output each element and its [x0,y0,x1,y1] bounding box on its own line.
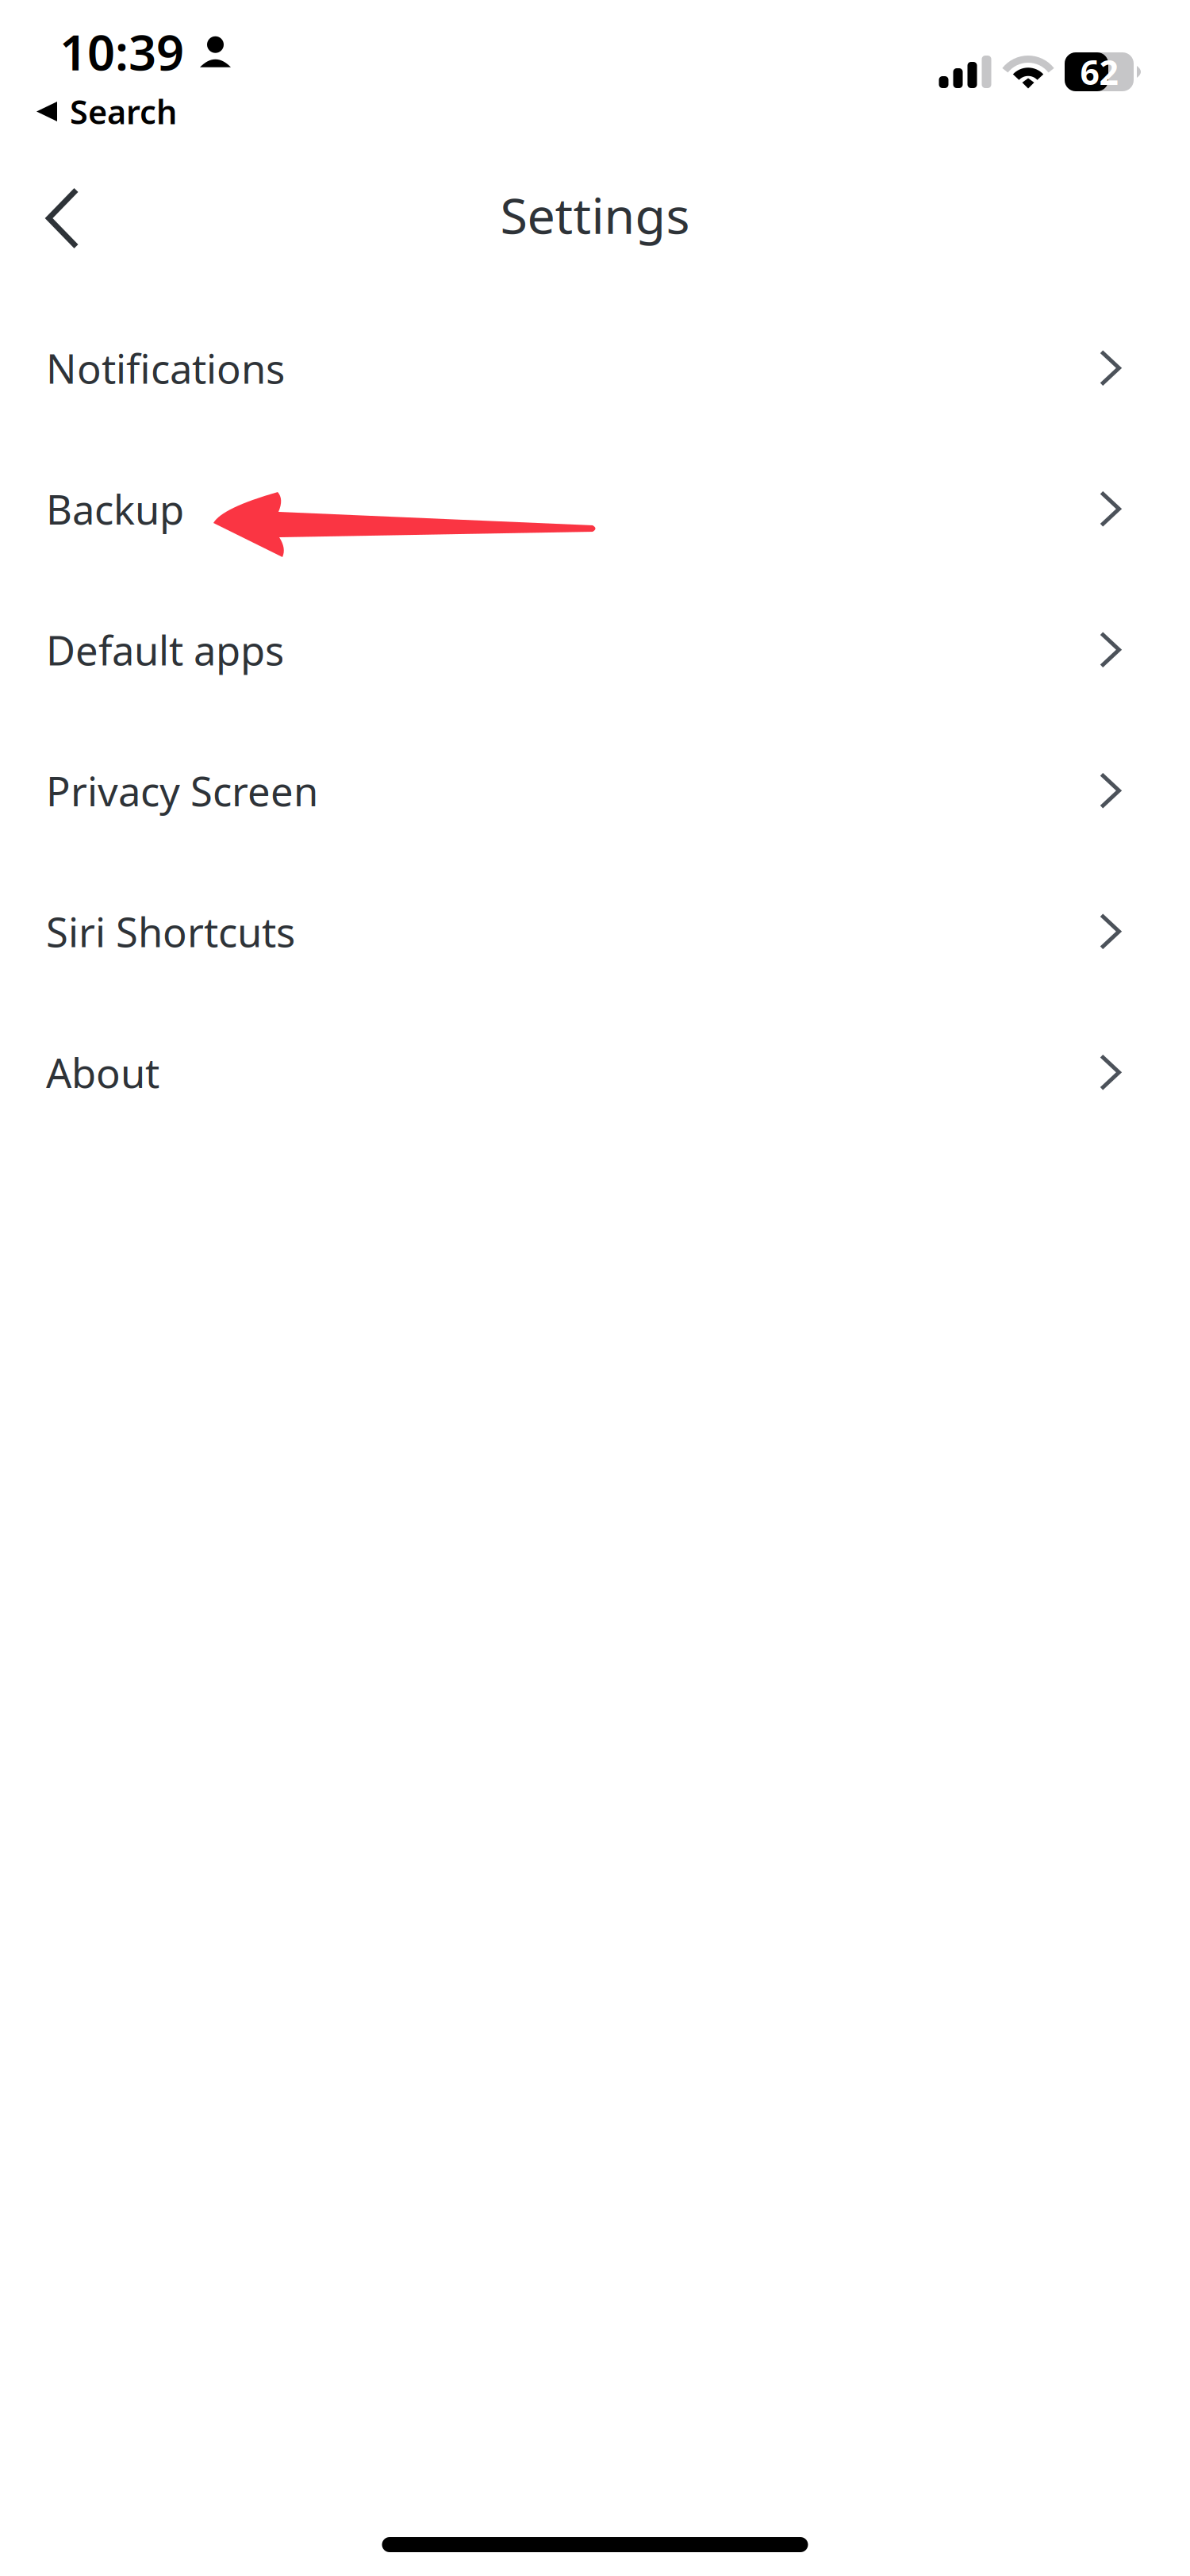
button[interactable]: Back [0,171,110,265]
button[interactable]: Default apps [0,579,1190,720]
staticText: Default apps [46,623,284,676]
staticText: Privacy Screen [46,764,318,817]
staticText: Settings [500,182,690,248]
staticText: 62 [1080,49,1118,94]
button[interactable]: Search [0,90,1190,133]
staticText: Siri Shortcuts [46,905,295,958]
button[interactable]: Backup [0,438,1190,579]
button[interactable]: About [0,1002,1190,1143]
button[interactable]: Siri Shortcuts [0,861,1190,1002]
staticText: Search [70,90,177,133]
staticText: 10:39 [59,19,184,84]
staticText: Notifications [46,341,285,395]
staticText: Backup [46,482,184,536]
button[interactable]: Privacy Screen [0,720,1190,861]
staticText: About [46,1046,159,1099]
button[interactable]: Notifications [0,298,1190,438]
